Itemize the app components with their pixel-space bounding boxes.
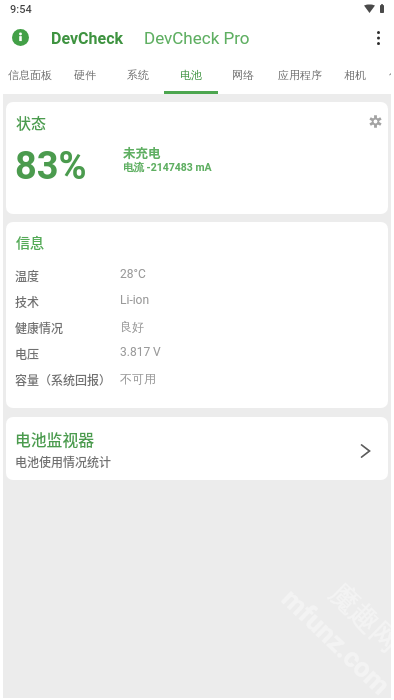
button[interactable]: 硬件	[60, 58, 110, 94]
staticText: 3.817 V	[120, 345, 161, 359]
staticText: 电压	[15, 345, 40, 362]
button[interactable]: DevCheck	[51, 29, 124, 48]
button[interactable]: 网络	[218, 58, 268, 94]
button[interactable]: 应用程序	[264, 58, 336, 94]
button[interactable]: 系统	[113, 58, 163, 94]
staticText: 容量（系统回报）	[15, 371, 112, 388]
staticText: 电池	[180, 68, 202, 82]
staticText: 28°C	[120, 267, 146, 281]
staticText: 硬件	[74, 68, 96, 82]
staticText: Li-ion	[120, 293, 150, 307]
staticText: 电池使用情况统计	[15, 453, 112, 470]
staticText: 应用程序	[278, 68, 322, 82]
staticText: 不可用	[120, 371, 156, 386]
button[interactable]: 相机	[330, 58, 380, 94]
button[interactable]: 电池监视器	[6, 417, 388, 480]
staticText: 电池监视器	[15, 428, 94, 451]
staticText: 网络	[232, 68, 254, 82]
button[interactable]: Settings	[359, 105, 388, 137]
staticText: 良好	[120, 319, 144, 334]
staticText: 9:54	[10, 3, 32, 16]
staticText: 信息面板	[8, 68, 52, 82]
staticText: 信	[389, 68, 391, 82]
button[interactable]: More options	[362, 22, 391, 54]
staticText: 状态	[16, 112, 47, 134]
staticText: 未充电	[123, 143, 161, 161]
button[interactable]: DevCheck Pro	[144, 28, 250, 48]
staticText: 83%	[15, 144, 87, 189]
button[interactable]: 信	[375, 58, 391, 94]
staticText: 相机	[344, 68, 366, 82]
button[interactable]: App info	[12, 29, 29, 46]
staticText: 电流 -2147483 mA	[123, 161, 212, 174]
button[interactable]: 信息面板	[3, 58, 66, 94]
button[interactable]: 电池	[166, 58, 216, 94]
staticText: 系统	[127, 68, 149, 82]
staticText: 技术	[15, 293, 40, 310]
staticText: 温度	[15, 267, 40, 284]
staticText: 健康情况	[15, 319, 64, 336]
staticText: 信息	[16, 232, 44, 252]
